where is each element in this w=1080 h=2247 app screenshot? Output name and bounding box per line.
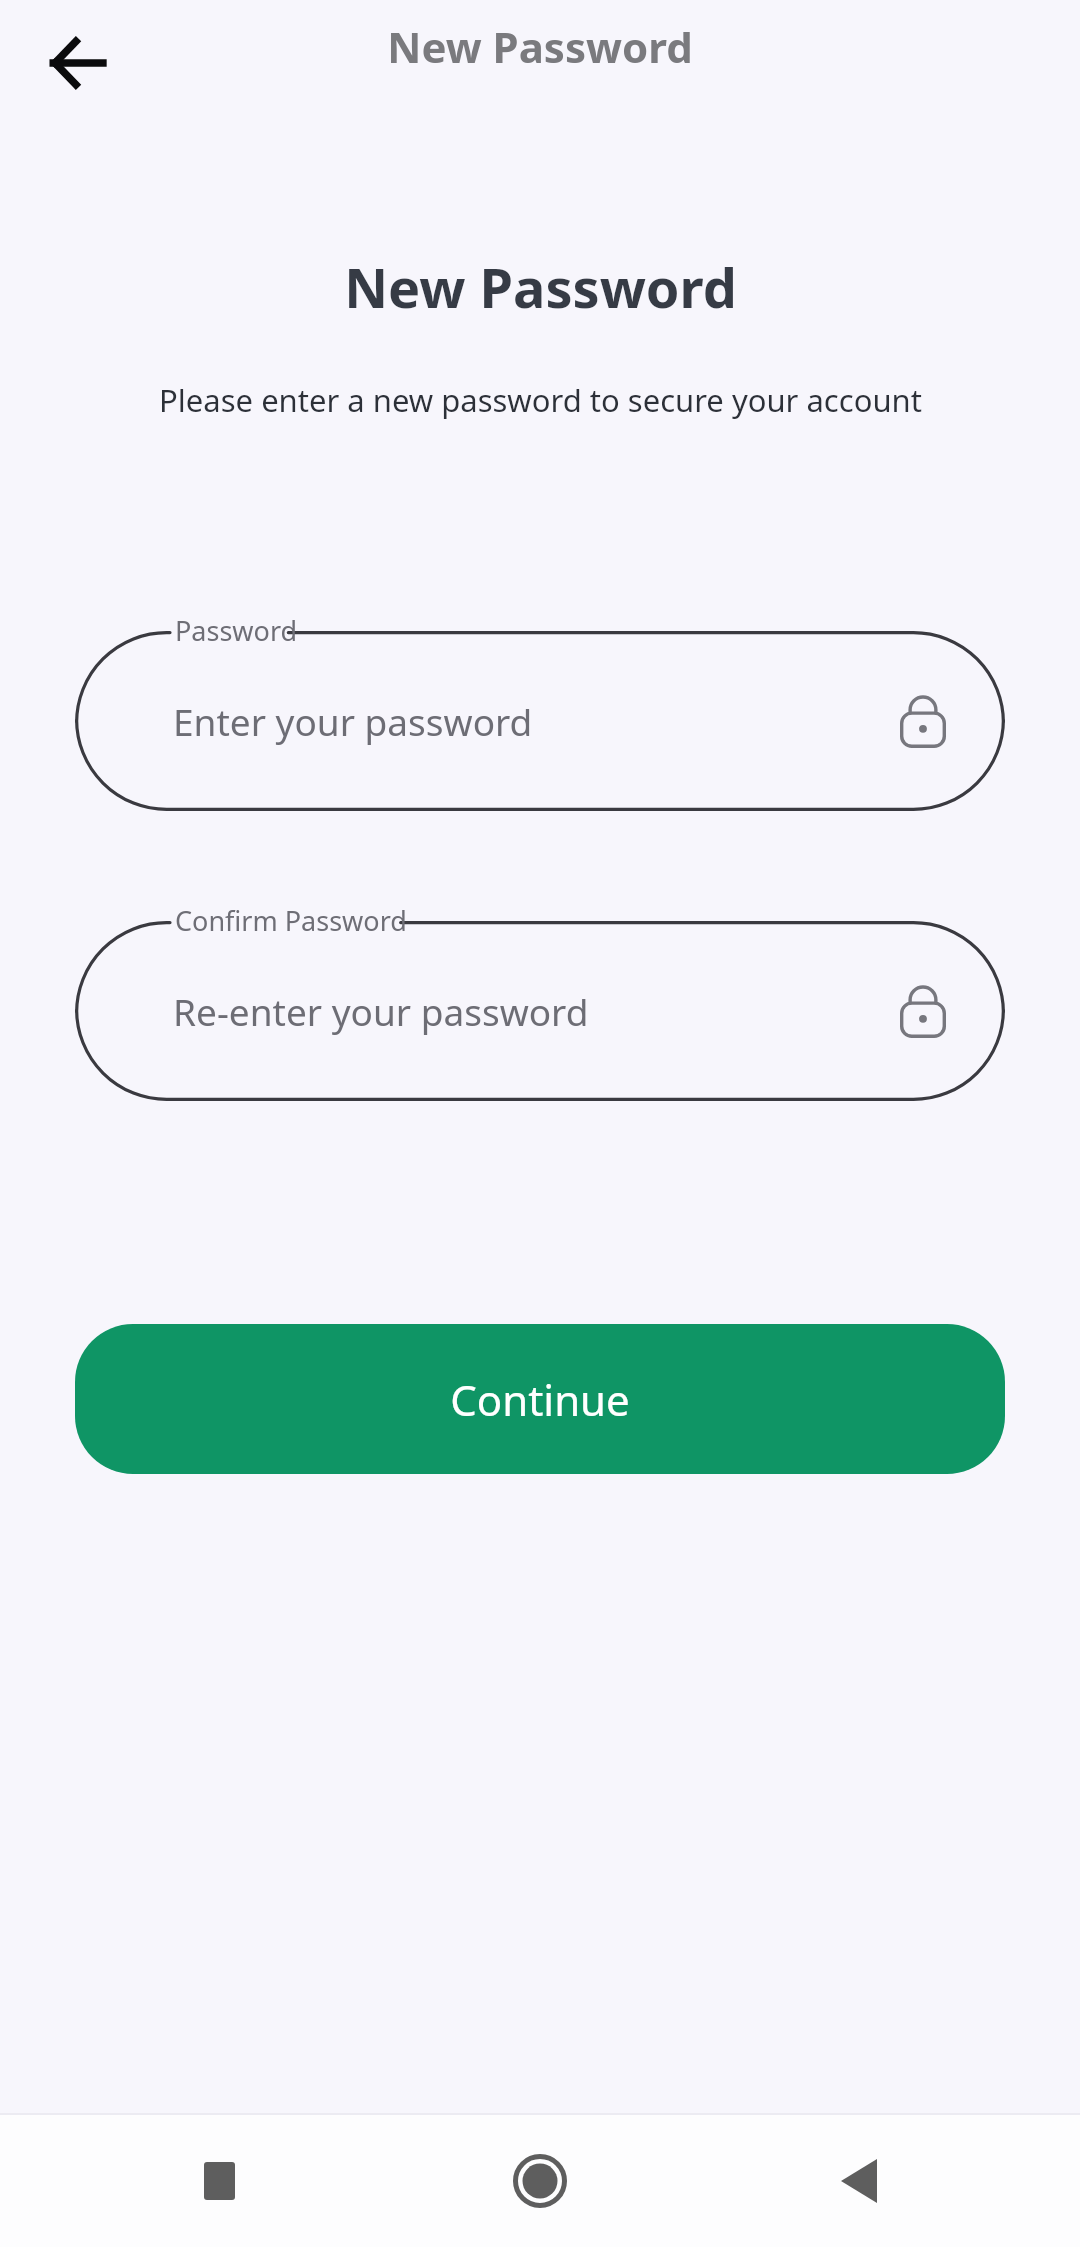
button[interactable]: Recent apps <box>177 2139 261 2223</box>
staticText: Enter your password <box>173 696 533 746</box>
button[interactable]: Back <box>29 15 125 111</box>
staticText: Continue <box>450 1371 630 1428</box>
staticText: Please enter a new password to secure yo… <box>159 379 922 421</box>
button[interactable]: Password <box>75 601 1005 811</box>
staticText: New Password <box>387 18 693 75</box>
staticText: Password <box>175 612 298 649</box>
button[interactable]: Confirm Password <box>75 891 1005 1101</box>
button[interactable]: Toggle password visibility <box>881 969 965 1053</box>
button[interactable]: Back <box>817 2139 901 2223</box>
staticText: Re-enter your password <box>173 986 589 1036</box>
button[interactable]: Home <box>498 2139 582 2223</box>
staticText: New Password <box>344 250 737 324</box>
button[interactable]: Continue <box>75 1324 1005 1474</box>
button[interactable]: Toggle password visibility <box>881 679 965 763</box>
staticText: Confirm Password <box>175 902 407 939</box>
